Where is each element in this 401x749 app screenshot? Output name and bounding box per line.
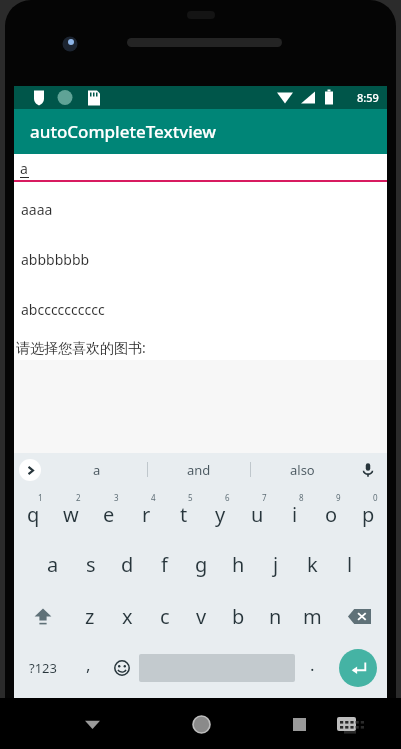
button[interactable]: k: [294, 538, 331, 590]
staticText: 5: [188, 492, 193, 503]
staticText: 7: [262, 492, 267, 503]
button[interactable]: d: [109, 538, 146, 590]
staticText: aaaa: [21, 200, 53, 219]
button[interactable]: 1: [14, 486, 52, 538]
button[interactable]: Shift: [14, 590, 71, 642]
button[interactable]: a: [14, 154, 387, 182]
staticText: h: [232, 551, 245, 578]
button[interactable]: 0: [350, 486, 387, 538]
staticText: i: [292, 501, 298, 528]
staticText: a: [20, 159, 28, 178]
button[interactable]: 3: [90, 486, 128, 538]
staticText: also: [290, 461, 315, 479]
button[interactable]: 9: [313, 486, 350, 538]
button[interactable]: and: [148, 453, 250, 486]
button[interactable]: ?123: [14, 642, 71, 694]
staticText: 2: [76, 492, 81, 503]
button[interactable]: f: [146, 538, 183, 590]
staticText: t: [180, 501, 188, 528]
button[interactable]: also: [251, 453, 353, 486]
staticText: p: [362, 501, 375, 528]
button[interactable]: c: [146, 590, 183, 642]
staticText: z: [85, 603, 95, 630]
button[interactable]: s: [72, 538, 109, 590]
staticText: u: [251, 501, 264, 528]
staticText: .: [310, 653, 315, 676]
staticText: 请选择您喜欢的图书:: [16, 338, 146, 357]
staticText: m: [303, 603, 322, 630]
staticText: 8:59: [357, 90, 379, 105]
staticText: 8: [299, 492, 304, 503]
staticText: q: [27, 501, 40, 528]
staticText: d: [121, 551, 134, 578]
button[interactable]: abbbbbbb: [14, 234, 387, 284]
staticText: j: [273, 551, 279, 578]
staticText: c: [160, 603, 170, 630]
staticText: abbbbbbb: [21, 250, 90, 269]
staticText: 0: [373, 492, 378, 503]
button[interactable]: a: [46, 453, 147, 486]
button[interactable]: .: [295, 642, 329, 694]
button[interactable]: a: [34, 538, 72, 590]
staticText: v: [196, 603, 207, 630]
button[interactable]: Home: [184, 707, 218, 741]
staticText: o: [325, 501, 338, 528]
staticText: 6: [225, 492, 230, 503]
staticText: g: [195, 551, 208, 578]
staticText: b: [232, 603, 245, 630]
staticText: 4: [151, 492, 156, 503]
button[interactable]: Back: [75, 707, 109, 741]
staticText: n: [269, 603, 282, 630]
staticText: 9: [336, 492, 341, 503]
staticText: y: [215, 501, 226, 528]
staticText: autoCompleteTextview: [30, 120, 216, 143]
button[interactable]: ,: [71, 642, 105, 694]
button[interactable]: m: [294, 590, 331, 642]
button[interactable]: Voice input: [357, 459, 379, 481]
button[interactable]: b: [220, 590, 257, 642]
staticText: a: [93, 461, 101, 479]
staticText: s: [86, 551, 96, 578]
button[interactable]: Emoji: [105, 642, 139, 694]
staticText: 3: [114, 492, 119, 503]
staticText: ?123: [29, 659, 57, 677]
button[interactable]: n: [257, 590, 294, 642]
button[interactable]: g: [183, 538, 220, 590]
button[interactable]: Expand suggestions: [19, 459, 41, 481]
button[interactable]: j: [257, 538, 294, 590]
staticText: l: [347, 551, 353, 578]
button[interactable]: v: [183, 590, 220, 642]
button[interactable]: Backspace: [331, 590, 387, 642]
staticText: and: [187, 461, 211, 479]
staticText: w: [63, 501, 79, 528]
staticText: abcccccccccc: [21, 300, 105, 319]
staticText: e: [103, 501, 115, 528]
button[interactable]: 5: [165, 486, 202, 538]
button[interactable]: aaaa: [14, 184, 387, 234]
button[interactable]: 4: [128, 486, 165, 538]
button[interactable]: Recents: [282, 707, 316, 741]
staticText: a: [47, 551, 59, 578]
staticText: f: [161, 551, 168, 578]
staticText: ,: [86, 653, 91, 676]
button[interactable]: Enter: [329, 642, 387, 694]
staticText: x: [122, 603, 133, 630]
button[interactable]: 6: [202, 486, 239, 538]
staticText: k: [307, 551, 318, 578]
button[interactable]: x: [109, 590, 146, 642]
button[interactable]: Switch keyboard: [329, 707, 363, 741]
button[interactable]: h: [220, 538, 257, 590]
button[interactable]: abcccccccccc: [14, 284, 387, 334]
button[interactable]: z: [71, 590, 109, 642]
staticText: 1: [38, 492, 43, 503]
button[interactable]: l: [331, 538, 368, 590]
button[interactable]: 8: [276, 486, 313, 538]
staticText: r: [142, 501, 151, 528]
button[interactable]: autoCompleteTextview: [14, 109, 387, 154]
button[interactable]: 2: [52, 486, 90, 538]
button[interactable]: 7: [239, 486, 276, 538]
